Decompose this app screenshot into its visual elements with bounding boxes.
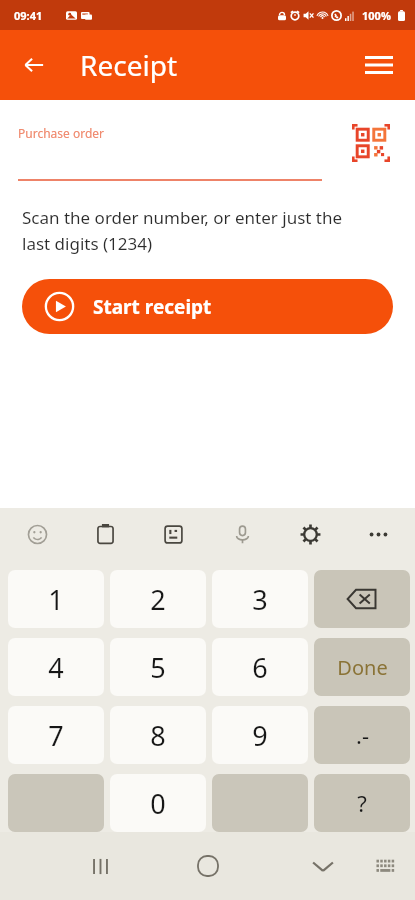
button[interactable]: 0 bbox=[110, 774, 206, 832]
staticText: Receipt bbox=[80, 46, 177, 84]
button[interactable]: Menu bbox=[355, 41, 403, 89]
staticText: 3 bbox=[252, 581, 268, 618]
staticText: 2 bbox=[150, 581, 166, 618]
staticText: 1 bbox=[48, 581, 64, 618]
staticText: 100% bbox=[362, 8, 391, 23]
button[interactable]: 3 bbox=[212, 570, 308, 628]
staticText: Purchase order bbox=[18, 125, 105, 141]
staticText: Scan the order number, or enter just the… bbox=[22, 206, 397, 255]
button[interactable]: Done bbox=[314, 638, 410, 696]
staticText: 09:41 bbox=[14, 8, 43, 23]
staticText: 8 bbox=[150, 717, 166, 754]
staticText: 7 bbox=[48, 717, 64, 754]
button[interactable]: Home bbox=[184, 842, 232, 890]
button[interactable]: Keyboard settings bbox=[291, 515, 329, 553]
button[interactable]: Recent apps bbox=[76, 842, 124, 890]
button[interactable]: 9 bbox=[212, 706, 308, 764]
staticText: ? bbox=[357, 788, 367, 818]
staticText: 4 bbox=[48, 649, 64, 686]
button[interactable]: Scan QR code bbox=[348, 120, 394, 166]
staticText: Done bbox=[337, 654, 388, 681]
button[interactable]: Hide keyboard bbox=[299, 842, 347, 890]
button[interactable]: ? bbox=[314, 774, 410, 832]
button[interactable]: More options bbox=[359, 515, 397, 553]
button[interactable]: Emoji bbox=[18, 515, 56, 553]
button[interactable] bbox=[212, 774, 308, 832]
button[interactable]: Back bbox=[12, 43, 56, 87]
button[interactable]: 6 bbox=[212, 638, 308, 696]
button[interactable]: 1 bbox=[8, 570, 104, 628]
staticText: 0 bbox=[150, 785, 166, 822]
staticText: Start receipt bbox=[93, 294, 212, 320]
button[interactable]: Backspace bbox=[314, 570, 410, 628]
button[interactable]: Start receipt bbox=[22, 279, 393, 334]
button[interactable]: 5 bbox=[110, 638, 206, 696]
staticText: 6 bbox=[252, 649, 268, 686]
staticText: 5 bbox=[150, 649, 166, 686]
button[interactable]: Clipboard bbox=[86, 515, 124, 553]
button[interactable]: 4 bbox=[8, 638, 104, 696]
staticText: 9 bbox=[252, 717, 268, 754]
button[interactable]: .- bbox=[314, 706, 410, 764]
button[interactable]: Voice input bbox=[223, 515, 261, 553]
button[interactable]: Stickers bbox=[154, 515, 192, 553]
button[interactable]: 8 bbox=[110, 706, 206, 764]
button[interactable]: 7 bbox=[8, 706, 104, 764]
button[interactable]: Change keyboard bbox=[365, 846, 405, 886]
button[interactable] bbox=[8, 774, 104, 832]
button[interactable]: 2 bbox=[110, 570, 206, 628]
staticText: .- bbox=[356, 720, 369, 750]
